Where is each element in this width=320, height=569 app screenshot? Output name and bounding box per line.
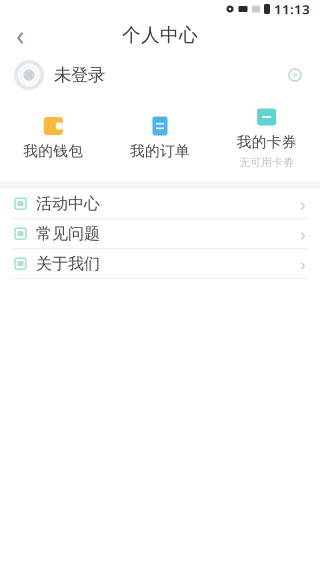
- staticText: 11:13: [274, 0, 310, 18]
- staticText: 个人中心: [122, 23, 198, 46]
- staticText: ›: [300, 251, 306, 276]
- button[interactable]: Settings: [278, 58, 312, 92]
- staticText: 未登录: [54, 64, 105, 86]
- staticText: 我的订单: [130, 142, 190, 160]
- staticText: ‹: [16, 17, 24, 53]
- button[interactable]: 我的钱包: [0, 111, 107, 164]
- button[interactable]: 常见问题: [0, 219, 320, 248]
- staticText: ›: [300, 191, 306, 216]
- button[interactable]: Back: [0, 18, 40, 52]
- staticText: 无可用卡券: [239, 156, 294, 169]
- button[interactable]: 活动中心: [0, 189, 320, 218]
- staticText: 我的卡券: [237, 133, 297, 151]
- button[interactable]: 未登录: [0, 60, 105, 90]
- staticText: 活动中心: [36, 194, 100, 213]
- staticText: 关于我们: [36, 254, 100, 273]
- button[interactable]: 关于我们: [0, 249, 320, 278]
- button[interactable]: 我的订单: [107, 111, 213, 164]
- staticText: 常见问题: [36, 224, 100, 243]
- staticText: 我的钱包: [23, 142, 83, 160]
- button[interactable]: 我的卡券: [213, 102, 320, 173]
- staticText: ›: [300, 221, 306, 246]
